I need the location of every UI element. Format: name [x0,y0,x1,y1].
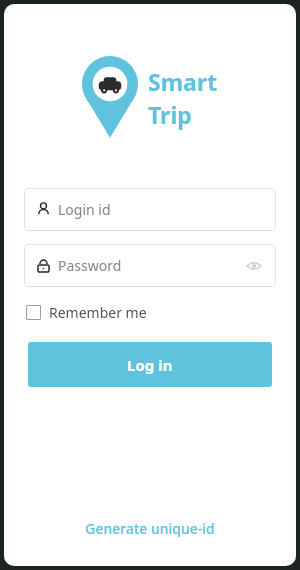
staticText: Password [58,256,122,275]
staticText: Generate unique-id [85,519,215,538]
button[interactable]: Remember me [26,303,147,322]
button[interactable]: Log in [28,342,272,387]
button[interactable]: Password [24,244,276,287]
staticText: Log in [127,355,173,375]
button[interactable]: Generate unique-id [79,513,221,544]
staticText: Trip [148,99,192,130]
button[interactable]: Show password [244,256,264,276]
button[interactable]: Login id [24,188,276,231]
staticText: Remember me [49,303,147,322]
staticText: Smart [148,66,218,97]
staticText: Login id [58,200,111,219]
